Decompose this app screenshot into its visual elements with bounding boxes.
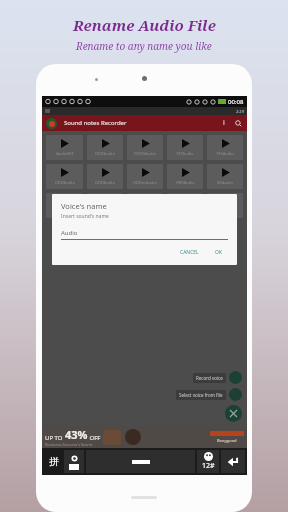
button[interactable]: Select voice from file [176, 388, 242, 405]
staticText: Business Success's Secret [45, 442, 93, 447]
staticText: OFF [88, 434, 101, 442]
button[interactable]: Record voice [193, 371, 242, 388]
staticText: RRRAudio [176, 180, 195, 185]
button[interactable]: FFFAudio [167, 135, 203, 160]
button[interactable]: XXXAudio [167, 193, 203, 218]
staticText: Record voice [196, 375, 223, 381]
button[interactable]: RRRAudio [167, 164, 203, 189]
button[interactable]: rrer 3 [127, 193, 163, 218]
staticText: Sound notes Recorder [64, 119, 127, 127]
button[interactable]: SDAudio [207, 164, 243, 189]
staticText: i [223, 118, 225, 128]
button[interactable]: Info [219, 118, 229, 128]
button[interactable]: Close [225, 405, 242, 422]
staticText: 12# [202, 461, 215, 471]
button[interactable]: Enter [221, 450, 245, 473]
button[interactable]: App icon [46, 118, 57, 129]
staticText: Rename to any name you like [76, 39, 212, 53]
button[interactable]: DDDAudio [87, 135, 123, 160]
button[interactable]: DDDSAudio [127, 135, 163, 160]
staticText: DDDAudio [55, 180, 75, 185]
button[interactable]: AudioEEE [46, 135, 83, 160]
staticText: Rename Audio File [73, 15, 216, 35]
button[interactable]: FFkAudio [207, 135, 243, 160]
staticText: CANCEL [180, 249, 199, 256]
button[interactable]: Pinyin [44, 450, 64, 473]
staticText: OK [215, 249, 223, 256]
staticText: AudioEEE [56, 151, 74, 156]
staticText: Insert sound's name [61, 213, 109, 220]
staticText: UP TO [45, 434, 65, 442]
staticText: 43% [65, 427, 88, 442]
staticText: FFkAudio [216, 151, 234, 156]
staticText: DDDAudio [95, 180, 115, 185]
staticText: DDDSAudio [134, 151, 156, 156]
button[interactable]: DDDerAudio [127, 164, 163, 189]
staticText: Audio [61, 229, 78, 237]
button[interactable]: Search [233, 118, 243, 128]
button[interactable]: CANCEL [175, 247, 204, 258]
button[interactable]: Space [86, 450, 195, 473]
staticText: 00:08 [228, 98, 244, 106]
staticText: DDDerAudio [133, 180, 157, 185]
staticText: Voice's name [61, 201, 107, 211]
button[interactable]: UP TO [42, 426, 247, 448]
button[interactable]: Settings [64, 450, 84, 473]
button[interactable]: Emoji and numbers [197, 450, 219, 473]
staticText: 拼 [49, 455, 59, 468]
staticText: 2:29 [236, 109, 244, 114]
staticText: FFFAudio [176, 151, 194, 156]
button[interactable]: rrer 2 [87, 193, 123, 218]
staticText: Banggood [217, 438, 237, 443]
button[interactable]: OK [210, 247, 228, 258]
staticText: SDAudio [217, 180, 233, 185]
button[interactable]: DDDAudio [46, 164, 83, 189]
staticText: DDDAudio [95, 151, 115, 156]
button[interactable]: YYYAudio [207, 193, 243, 218]
button[interactable]: rrer [46, 193, 83, 218]
button[interactable]: DDDAudio [87, 164, 123, 189]
staticText: Select voice from file [179, 392, 223, 398]
